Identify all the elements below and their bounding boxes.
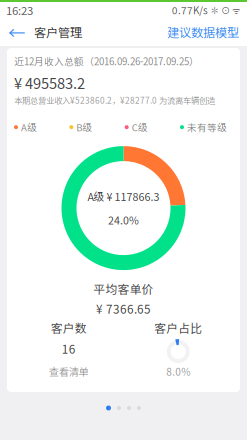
staticText: 查看清单 (49, 364, 89, 379)
button[interactable]: 查看清单 (49, 357, 89, 379)
button[interactable]: 建议数据模型 (167, 23, 239, 41)
staticText: A级 (21, 120, 37, 134)
staticText: 16 (62, 340, 76, 357)
staticText: ¥ 495583.2 (14, 72, 85, 93)
staticText: ← (8, 19, 25, 45)
staticText: B级 (76, 120, 92, 134)
staticText: 本期总营业收入¥523860.2，¥28277.0 为流离车辆创造 (14, 94, 215, 106)
staticText: 平均客单价 (93, 280, 153, 297)
staticText: A级 ¥ 117866.3 (87, 189, 159, 204)
staticText: 近12月收入总额（2016.09.26-2017.09.25） (14, 54, 199, 68)
staticText: ✽ ⊙ ᯤ (208, 3, 241, 17)
staticText: 24.0% (108, 212, 139, 227)
staticText: 客户占比 (154, 319, 202, 336)
staticText: 8.0% (166, 364, 190, 379)
staticText: 客户管理 (34, 23, 82, 41)
staticText: 建议数据模型 (167, 23, 239, 41)
staticText: 16:23 (6, 2, 33, 18)
staticText: 0.77K/s (172, 3, 208, 17)
staticText: ¥ 7366.65 (96, 300, 151, 317)
button[interactable]: Back (8, 19, 34, 45)
staticText: 未有等级 (187, 120, 227, 134)
staticText: 客户数 (51, 319, 87, 336)
staticText: C级 (132, 120, 148, 134)
